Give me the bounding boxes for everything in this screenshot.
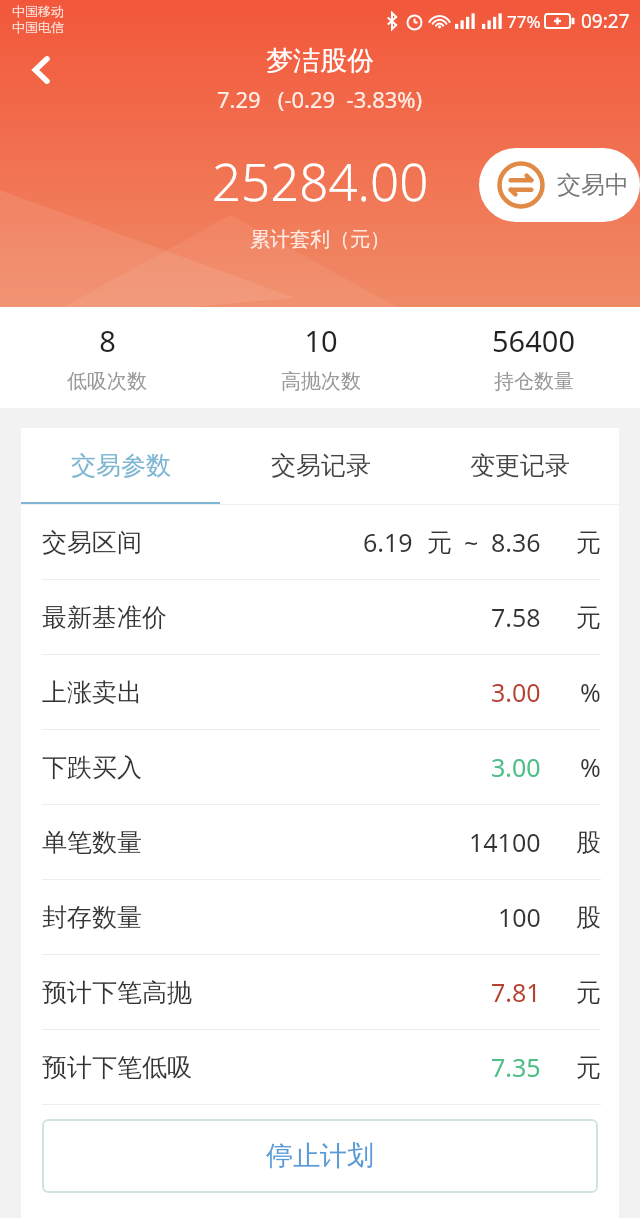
staticText: 变更记录 <box>470 450 570 481</box>
staticText: 77% <box>507 10 541 33</box>
staticText: 下跌买入 <box>42 752 142 783</box>
staticText: 100 <box>498 900 541 934</box>
staticText: 股 <box>576 902 601 933</box>
button[interactable]: 交易区间 <box>21 505 619 579</box>
button[interactable]: 交易中 <box>479 148 640 222</box>
button[interactable]: 8 <box>0 307 214 408</box>
staticText: 低吸次数 <box>67 369 147 394</box>
staticText: 25284.00 <box>212 146 429 215</box>
staticText: 元 <box>576 1052 601 1083</box>
staticText: 14100 <box>469 825 541 859</box>
staticText: 单笔数量 <box>42 827 142 858</box>
staticText: 中国移动 <box>12 3 64 19</box>
staticText: 封存数量 <box>42 902 142 933</box>
button[interactable]: 下跌买入 <box>21 730 619 804</box>
staticText: 元 <box>576 527 601 558</box>
staticText: 预计下笔低吸 <box>42 1052 192 1083</box>
button[interactable]: 最新基准价 <box>21 580 619 654</box>
button[interactable]: 变更记录 <box>420 428 619 502</box>
staticText: 交易中 <box>557 170 629 200</box>
button[interactable]: 预计下笔高抛 <box>21 955 619 1029</box>
button[interactable]: 交易参数 <box>21 428 221 502</box>
staticText: 元 <box>427 527 452 558</box>
staticText: 元 <box>576 602 601 633</box>
staticText: 上涨卖出 <box>42 677 142 708</box>
button[interactable]: 单笔数量 <box>21 805 619 879</box>
staticText: 交易区间 <box>42 527 142 558</box>
staticText: 7.58 <box>491 600 541 634</box>
staticText: 3.00 <box>491 675 541 709</box>
staticText: 交易记录 <box>271 450 371 481</box>
staticText: 7.35 <box>491 1050 541 1084</box>
staticText: 8 <box>99 321 116 360</box>
button[interactable]: 56400 <box>427 307 640 408</box>
staticText: 最新基准价 <box>42 602 167 633</box>
staticText: 持仓数量 <box>494 369 574 394</box>
staticText: 停止计划 <box>266 1139 374 1173</box>
staticText: 8.36 <box>491 525 541 559</box>
staticText: ~ <box>464 525 479 559</box>
staticText: 7.81 <box>491 975 541 1009</box>
button[interactable]: 10 <box>214 307 427 408</box>
staticText: 股 <box>576 827 601 858</box>
staticText: 元 <box>576 977 601 1008</box>
staticText: 交易参数 <box>71 450 171 481</box>
staticText: 中国电信 <box>12 19 64 35</box>
button[interactable]: 交易记录 <box>221 428 420 502</box>
staticText: % <box>580 750 601 784</box>
staticText: 7.29 (-0.29 -3.83%) <box>217 84 423 114</box>
button[interactable]: 封存数量 <box>21 880 619 954</box>
staticText: 56400 <box>492 321 575 360</box>
staticText: 高抛次数 <box>281 369 361 394</box>
button[interactable]: 停止计划 <box>42 1119 598 1193</box>
staticText: 梦洁股份 <box>266 44 374 78</box>
button[interactable]: 预计下笔低吸 <box>21 1030 619 1104</box>
staticText: 预计下笔高抛 <box>42 977 192 1008</box>
staticText: % <box>580 675 601 709</box>
staticText: 10 <box>304 321 338 360</box>
staticText: 累计套利（元） <box>250 227 390 252</box>
staticText: 09:27 <box>581 8 630 34</box>
button[interactable]: 上涨卖出 <box>21 655 619 729</box>
staticText: 3.00 <box>491 750 541 784</box>
button[interactable]: Back <box>14 42 70 98</box>
staticText: 6.19 <box>363 525 413 559</box>
